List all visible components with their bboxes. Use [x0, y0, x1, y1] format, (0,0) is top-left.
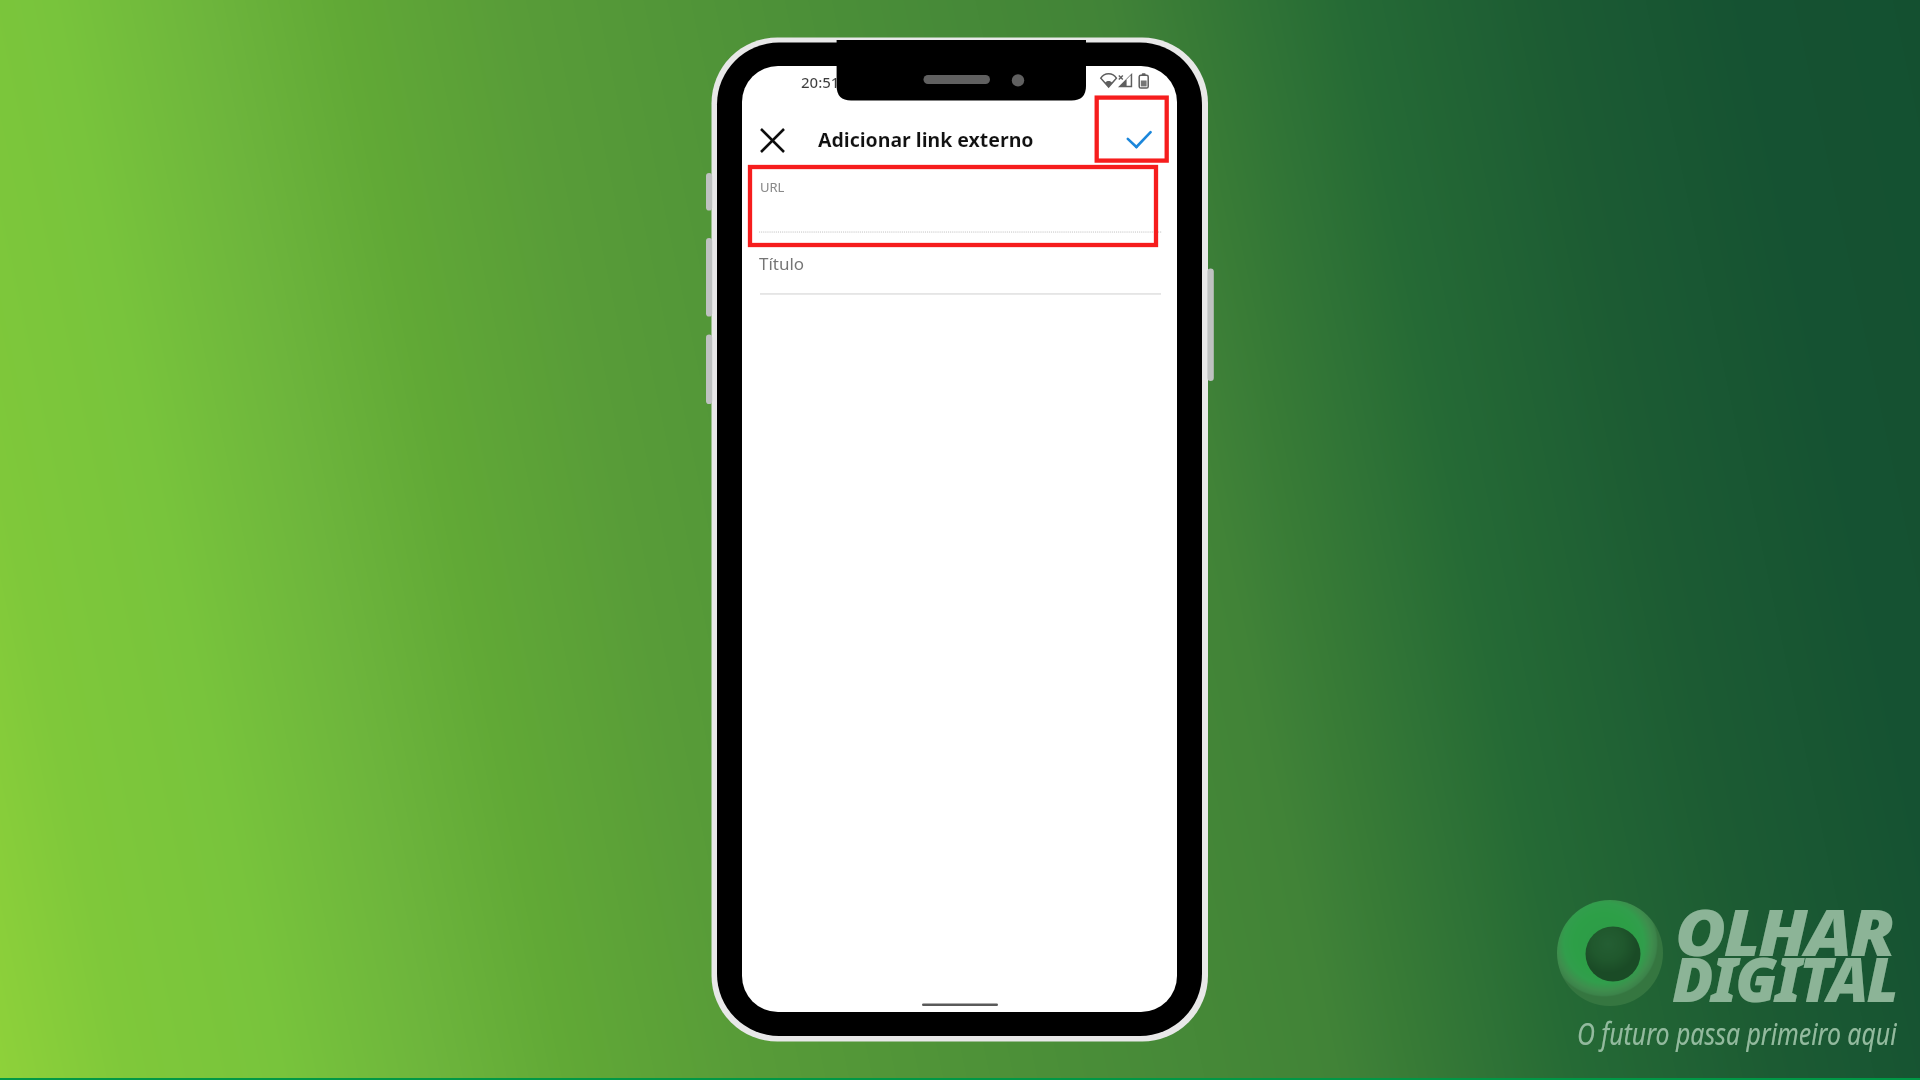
staticText: Adicionar link externo: [818, 126, 1034, 153]
staticText: DIGITAL: [1672, 936, 1896, 1020]
button[interactable]: Fechar: [748, 116, 796, 164]
staticText: OLHAR: [1675, 889, 1894, 975]
staticText: 20:51: [801, 72, 840, 92]
staticText: URL: [760, 178, 785, 196]
button[interactable]: Título: [742, 240, 1177, 296]
button[interactable]: URL: [742, 168, 1177, 234]
staticText: Título: [759, 252, 805, 275]
staticText: O futuro passa primeiro aqui: [1577, 1013, 1897, 1054]
button[interactable]: Confirmar: [1115, 116, 1163, 164]
